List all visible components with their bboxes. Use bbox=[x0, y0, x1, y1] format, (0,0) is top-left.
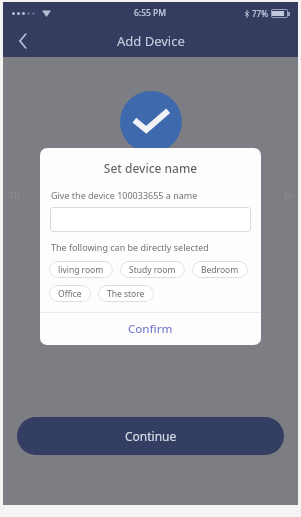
button[interactable]: Study room bbox=[120, 261, 185, 278]
staticText: Give the device 100033655 a name bbox=[51, 189, 198, 201]
staticText: 77% bbox=[252, 8, 268, 19]
button[interactable]: Office bbox=[49, 285, 91, 302]
staticText: Office bbox=[58, 288, 82, 300]
button[interactable]: Back bbox=[10, 28, 36, 54]
staticText: Continue bbox=[125, 428, 177, 444]
staticText: living room bbox=[58, 264, 104, 276]
staticText: fo bbox=[284, 189, 293, 201]
button[interactable]: living room bbox=[49, 261, 113, 278]
button[interactable]: Continue bbox=[17, 417, 284, 455]
button[interactable]: The store bbox=[98, 285, 154, 302]
button[interactable]: Bedroom bbox=[192, 261, 248, 278]
staticText: Confirm bbox=[128, 321, 173, 337]
button[interactable] bbox=[50, 207, 251, 232]
staticText: Th bbox=[9, 189, 20, 201]
staticText: Add Device bbox=[117, 32, 185, 50]
staticText: The following can be directly selected bbox=[51, 241, 209, 253]
staticText: Study room bbox=[129, 264, 176, 276]
staticText: The store bbox=[107, 288, 145, 300]
button[interactable]: Confirm bbox=[40, 313, 261, 345]
staticText: 6:55 PM bbox=[134, 7, 167, 19]
staticText: Bedroom bbox=[201, 264, 239, 276]
staticText: Set device name bbox=[40, 160, 261, 176]
